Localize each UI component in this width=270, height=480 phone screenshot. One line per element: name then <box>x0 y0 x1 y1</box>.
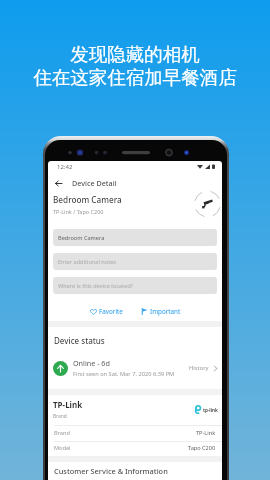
staticText: Device status <box>54 335 105 346</box>
staticText: History <box>189 364 209 372</box>
staticText: Favorite <box>99 307 123 316</box>
button[interactable]: Important <box>138 305 184 318</box>
staticText: Brand <box>54 429 70 437</box>
button[interactable]: Enter additional notes <box>53 253 217 270</box>
button[interactable]: Bedroom Camera <box>53 229 217 246</box>
staticText: TP-Link / Tapo C200 <box>53 208 104 215</box>
button[interactable]: Online - 6d <box>48 358 222 378</box>
staticText: First seen on Sat, Mar 7, 2020 6:39 PM <box>73 370 175 378</box>
button[interactable]: Favorite <box>87 305 126 318</box>
staticText: Customer Service & Information <box>54 466 168 476</box>
staticText: Model <box>54 444 71 452</box>
button[interactable]: Brand <box>48 424 222 441</box>
staticText: TP-Link <box>196 429 216 437</box>
button[interactable]: Back <box>52 177 65 190</box>
staticText: Bedroom Camera <box>58 234 105 242</box>
staticText: Tapo C200 <box>188 444 216 452</box>
button[interactable]: Where is this device located? <box>53 277 217 294</box>
button[interactable]: Model <box>48 439 222 456</box>
staticText: 发现隐藏的相机 <box>70 43 200 66</box>
staticText: Online - 6d <box>73 358 110 368</box>
button[interactable]: Scan device <box>193 192 221 216</box>
staticText: Where is this device located? <box>58 282 134 290</box>
staticText: Important <box>150 307 181 316</box>
staticText: tp-link <box>203 407 218 413</box>
staticText: 住在这家住宿加早餐酒店 <box>33 66 237 89</box>
staticText: Device Detail <box>72 178 117 188</box>
staticText: Enter additional notes <box>58 258 117 266</box>
staticText: Bedroom Camera <box>53 194 122 205</box>
staticText: TP-Link <box>53 399 83 410</box>
staticText: Brand <box>53 413 67 420</box>
staticText: 12:42 <box>57 163 73 171</box>
